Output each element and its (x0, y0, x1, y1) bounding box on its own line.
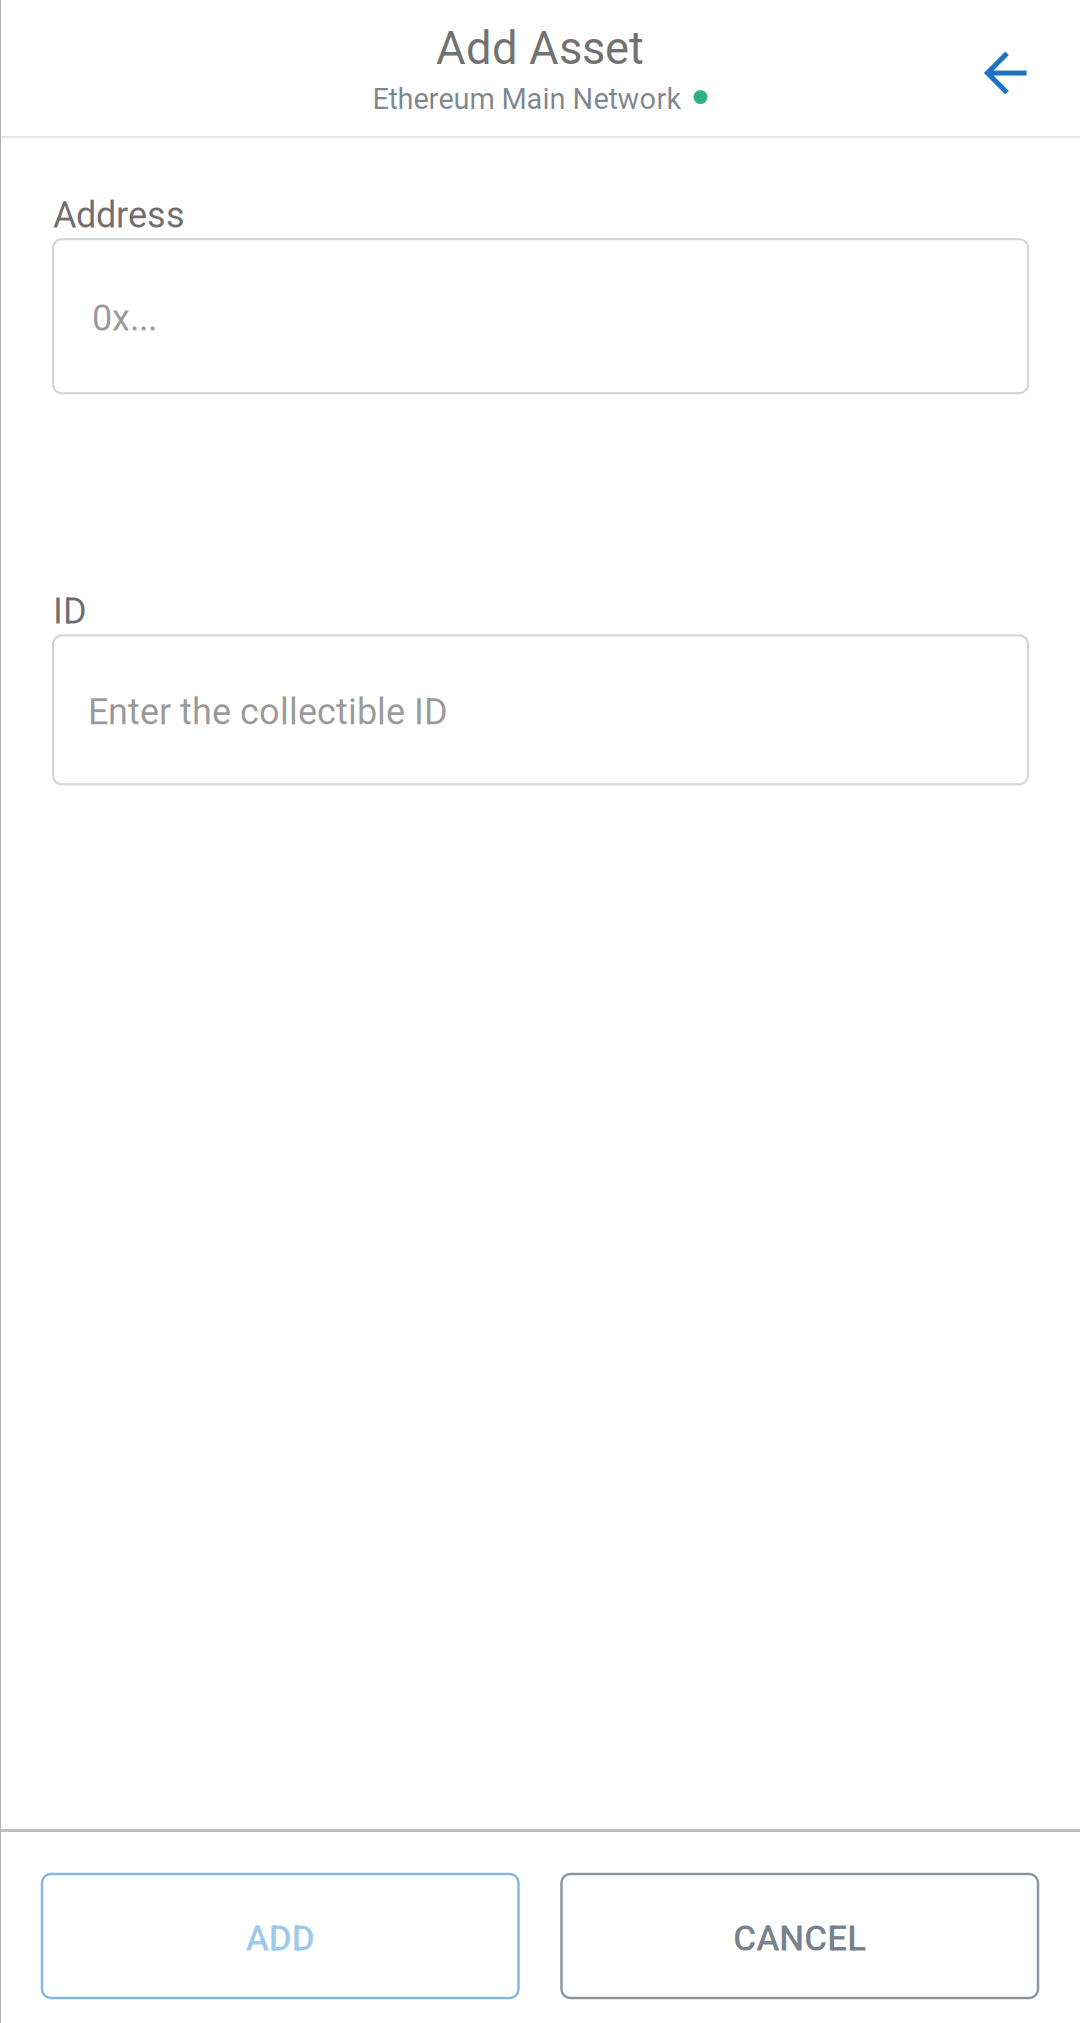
staticText: ADD (246, 1918, 315, 1959)
button[interactable]: ADD (42, 1874, 518, 1998)
staticText: 0x... (92, 297, 157, 339)
staticText: ID (53, 590, 87, 632)
button[interactable]: Back (959, 25, 1055, 121)
staticText: Ethereum Main Network (372, 82, 681, 116)
button[interactable]: CANCEL (561, 1874, 1038, 1998)
staticText: Address (53, 194, 185, 236)
staticText: Add Asset (436, 22, 644, 75)
staticText: CANCEL (733, 1918, 866, 1959)
staticText: Enter the collectible ID (88, 691, 448, 733)
